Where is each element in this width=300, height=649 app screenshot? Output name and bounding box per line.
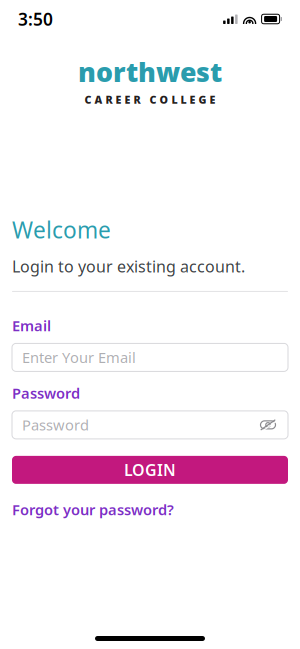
staticText: Forgot your password? [12, 500, 174, 519]
staticText: Password [12, 383, 80, 403]
staticText: Login to your existing account. [12, 256, 245, 277]
button[interactable]: LOGIN [12, 456, 288, 484]
staticText: Password [22, 415, 89, 435]
staticText: Welcome [12, 215, 111, 245]
button[interactable]: Forgot your password? [12, 500, 174, 519]
staticText: C A R E E R C O L L E G E [84, 92, 215, 107]
staticText: Email [12, 316, 51, 335]
staticText: northwest [78, 54, 222, 89]
button[interactable]: Show password [258, 415, 278, 435]
staticText: LOGIN [124, 459, 176, 480]
staticText: 3:50 [18, 7, 53, 30]
staticText: Enter Your Email [22, 348, 136, 367]
